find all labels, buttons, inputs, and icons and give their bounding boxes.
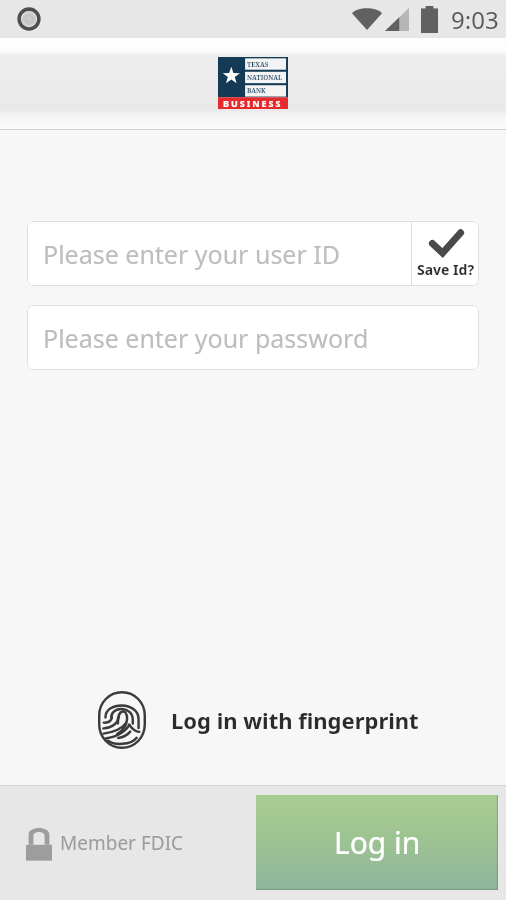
other: Secure — [26, 825, 52, 861]
button[interactable]: Please enter your password — [27, 305, 479, 370]
button[interactable]: Please enter your user ID — [27, 221, 411, 286]
staticText: Please enter your user ID — [43, 237, 341, 271]
button[interactable]: Log in — [256, 795, 498, 890]
staticText: 9:03 — [451, 3, 499, 36]
staticText: BANK — [247, 86, 266, 95]
staticText: Member FDIC — [60, 830, 184, 856]
button[interactable]: Fingerprint — [11, 691, 506, 749]
button[interactable]: Save Id? — [412, 221, 479, 286]
staticText: TEXAS — [247, 60, 269, 69]
staticText: Log in with fingerprint — [171, 705, 419, 735]
staticText: Log in — [334, 822, 421, 863]
staticText: NATIONAL — [247, 73, 283, 82]
button[interactable]: Secure — [26, 825, 184, 861]
staticText: Save Id? — [417, 260, 475, 279]
staticText: BUSINESS — [223, 97, 283, 109]
staticText: Please enter your password — [43, 321, 369, 355]
other: Fingerprint — [98, 691, 146, 749]
